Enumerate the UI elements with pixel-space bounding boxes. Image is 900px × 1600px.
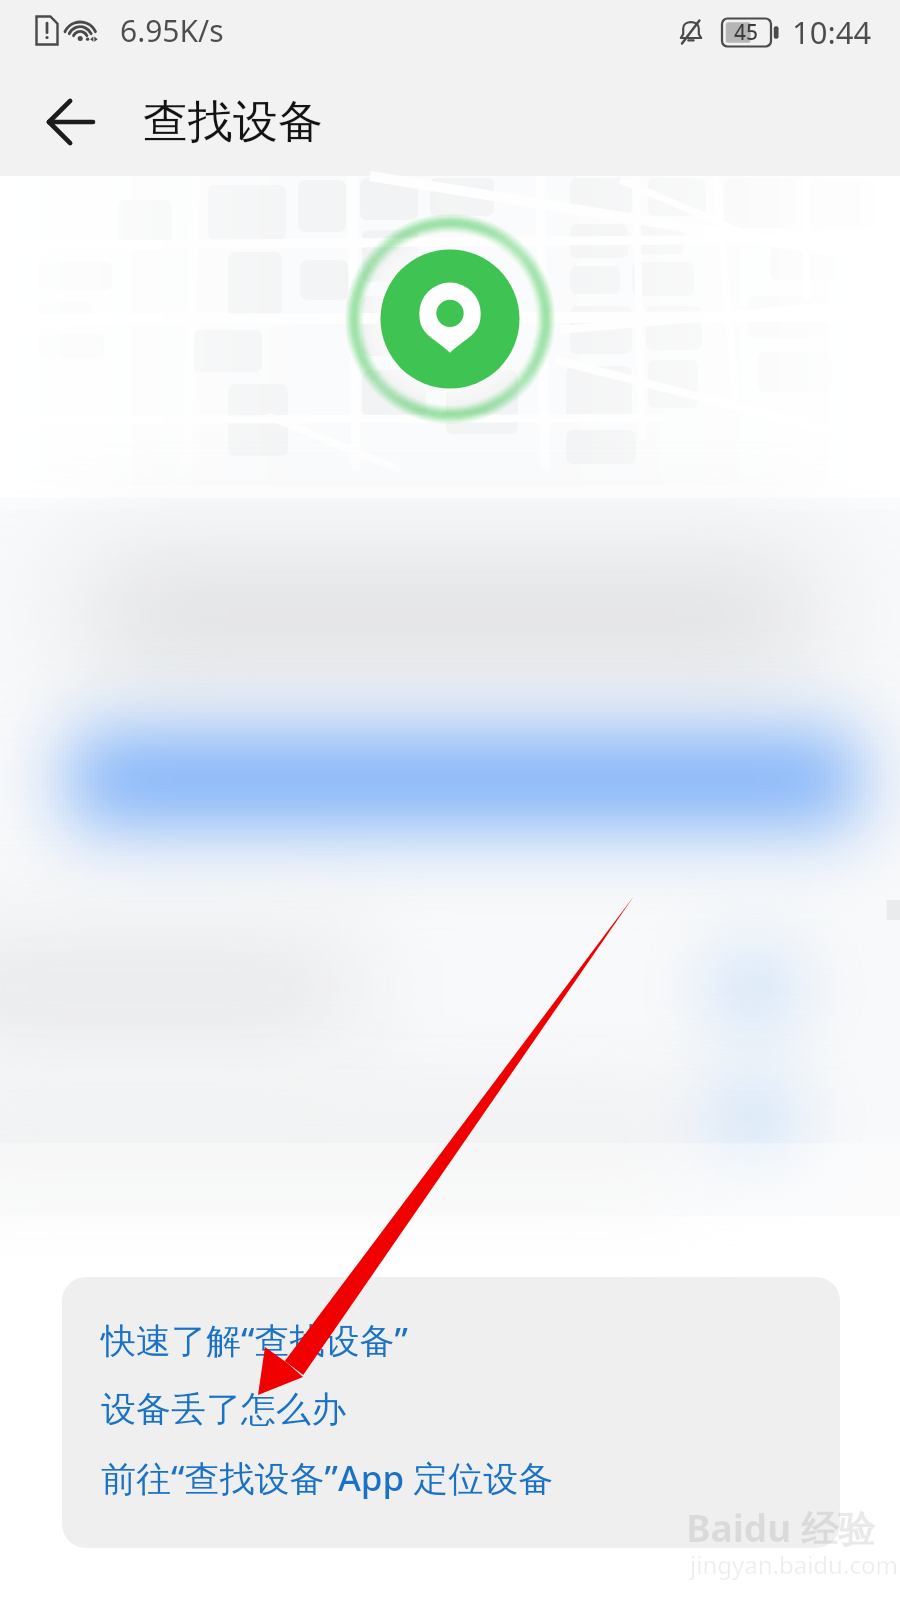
staticText: 前往“查找设备”App 定位设备	[101, 1454, 554, 1502]
staticText: 6.95K/s	[120, 10, 224, 51]
button[interactable]: 前往“查找设备”App 定位设备	[101, 1443, 816, 1512]
staticText: 10:44	[792, 11, 872, 53]
staticText: 快速了解“查找设备”	[101, 1316, 408, 1364]
staticText: 设备丢了怎么办	[101, 1387, 346, 1431]
button[interactable]: Back	[26, 78, 116, 166]
button[interactable]: 设备丢了怎么办	[101, 1374, 816, 1443]
staticText: Baidu 经验	[686, 1502, 875, 1553]
staticText: 45	[734, 18, 759, 47]
staticText: 查找设备	[143, 94, 323, 151]
staticText: jingyan.baidu.com	[690, 1548, 898, 1581]
button[interactable]: 快速了解“查找设备”	[101, 1305, 816, 1374]
